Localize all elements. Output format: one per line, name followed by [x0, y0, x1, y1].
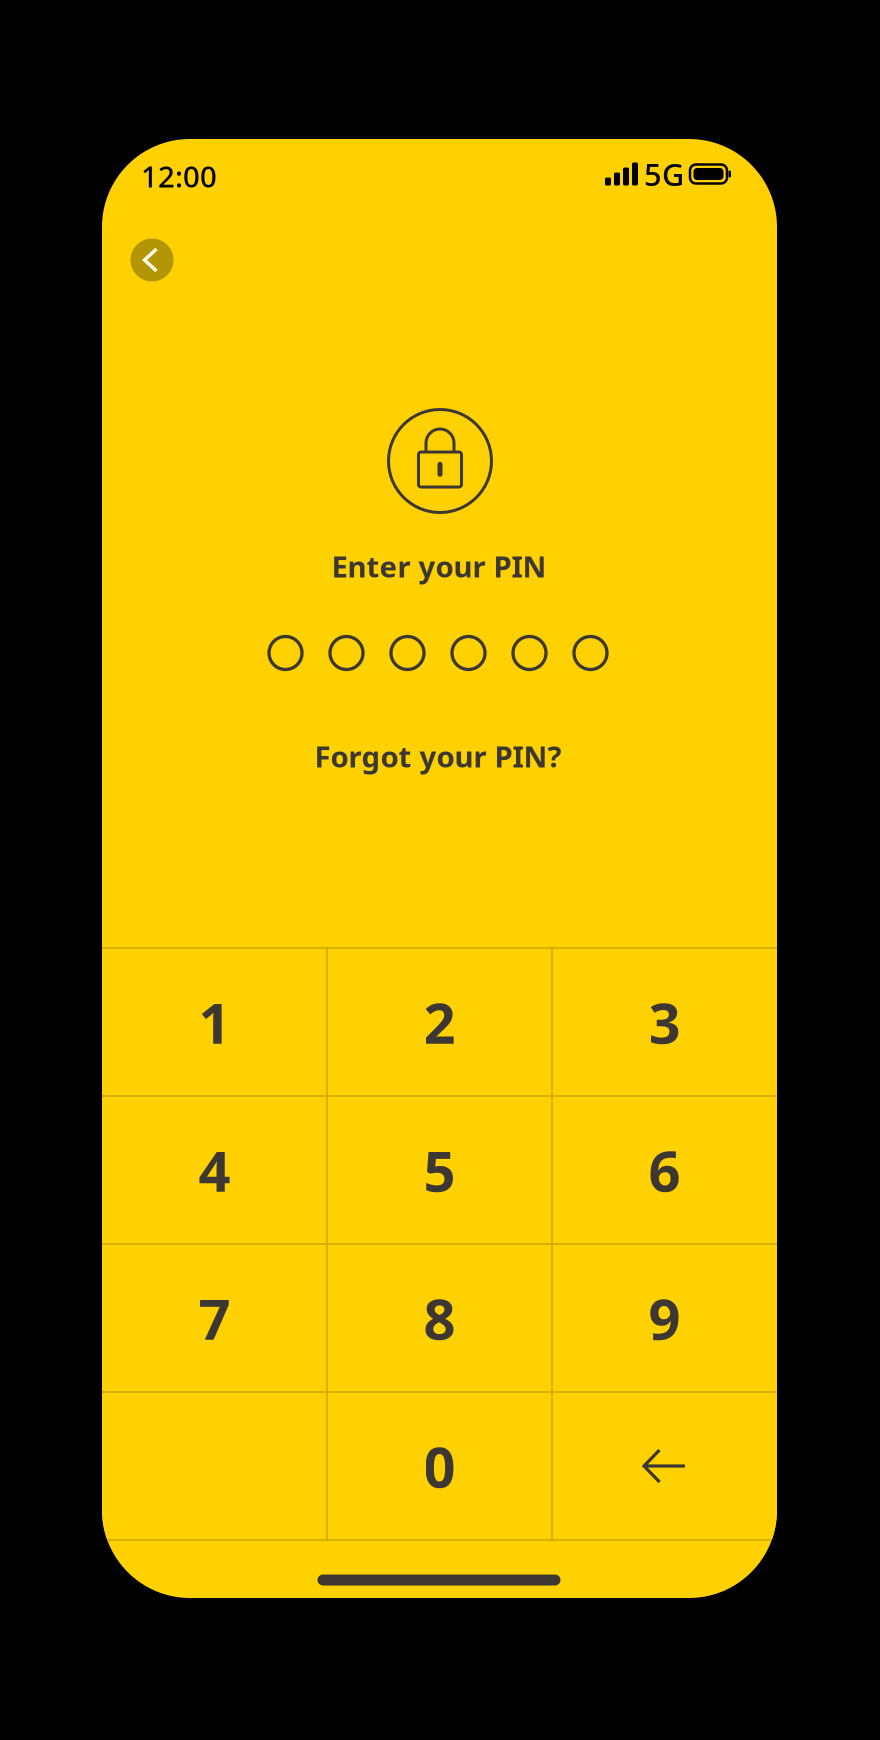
button[interactable]: Delete [552, 1392, 777, 1540]
staticText: 2 [423, 985, 455, 1059]
button[interactable]: 1 [102, 948, 327, 1096]
staticText: Forgot your PIN? [314, 736, 561, 775]
button[interactable]: 8 [327, 1244, 552, 1392]
staticText: Enter your PIN [331, 546, 546, 585]
staticText: 8 [423, 1281, 455, 1355]
button[interactable]: 2 [327, 948, 552, 1096]
button[interactable]: 3 [552, 948, 777, 1096]
button[interactable]: 6 [552, 1096, 777, 1244]
staticText: 6 [648, 1133, 680, 1207]
button[interactable]: 9 [552, 1244, 777, 1392]
button[interactable]: 0 [327, 1392, 552, 1540]
button[interactable]: 7 [102, 1244, 327, 1392]
button[interactable]: Back [130, 238, 173, 281]
staticText: 9 [648, 1281, 680, 1355]
staticText: 7 [198, 1281, 230, 1355]
staticText: 4 [198, 1133, 230, 1207]
staticText: 5 [423, 1133, 455, 1207]
button[interactable]: Forgot your PIN? [288, 734, 588, 778]
staticText: 1 [198, 985, 230, 1059]
staticText: 3 [648, 985, 680, 1059]
button[interactable]: 4 [102, 1096, 327, 1244]
staticText: 5G [644, 154, 684, 194]
staticText: 0 [423, 1429, 455, 1503]
staticText: 12:00 [141, 156, 217, 195]
button[interactable]: 5 [327, 1096, 552, 1244]
